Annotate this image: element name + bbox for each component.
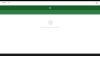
- button[interactable]: App logo: [0, 0, 100, 10]
